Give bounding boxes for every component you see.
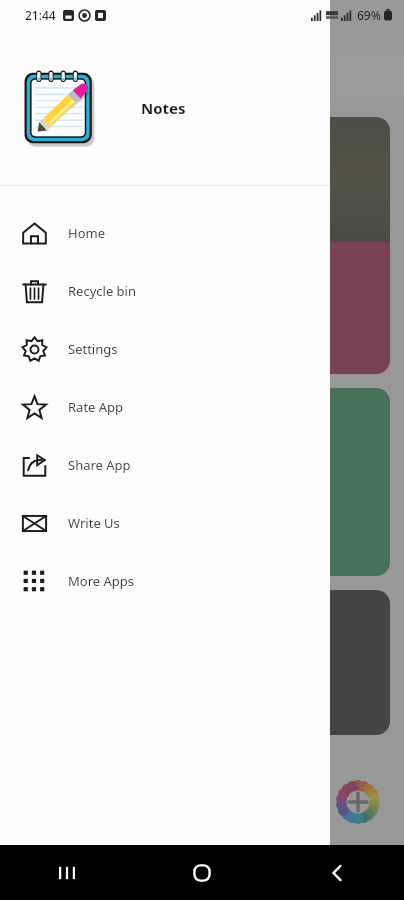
button[interactable]: Share App	[0, 436, 330, 494]
staticText: 12 December 2022	[30, 402, 136, 418]
button[interactable]: 05 December 2022	[14, 590, 390, 735]
staticText: Settings	[68, 340, 118, 358]
staticText: 21:44	[25, 7, 56, 23]
staticText: Start with the smallest step, and before…	[30, 284, 181, 340]
button[interactable]: Settings	[0, 320, 330, 378]
staticText: 69%	[357, 7, 381, 23]
button[interactable]: Rate App	[0, 378, 330, 436]
staticText: Rate App	[68, 398, 124, 416]
staticText: More Apps	[68, 572, 135, 590]
button[interactable]: 18 December 2022	[14, 117, 390, 374]
button[interactable]: Add note	[330, 774, 386, 830]
staticText: Notes	[141, 98, 186, 118]
button[interactable]: Recent apps	[43, 849, 91, 897]
button[interactable]: Notes	[0, 30, 330, 185]
button[interactable]: More Apps	[0, 552, 330, 610]
button[interactable]: Recycle bin	[0, 262, 330, 320]
staticText: Share App	[68, 456, 131, 474]
button[interactable]: Home	[0, 204, 330, 262]
button[interactable]: Write Us	[0, 494, 330, 552]
button[interactable]: Back	[313, 849, 361, 897]
staticText: Write Us	[68, 514, 120, 532]
staticText: Home	[68, 224, 105, 242]
button[interactable]: Home	[178, 849, 226, 897]
staticText: Treat yourself with care and kindness in…	[30, 432, 168, 551]
button[interactable]: 12 December 2022	[14, 388, 390, 576]
staticText: Recycle bin	[68, 282, 136, 300]
